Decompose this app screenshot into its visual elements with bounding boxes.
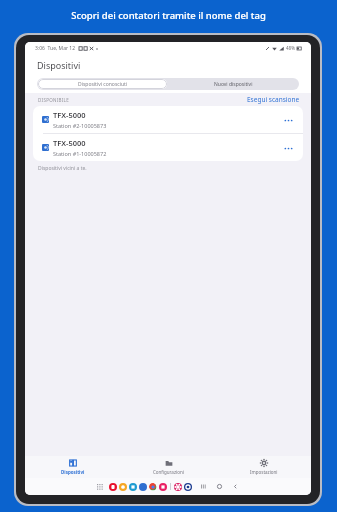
button[interactable]: App: [109, 483, 117, 491]
other: Apps: [97, 484, 103, 490]
button[interactable]: TFX-5000: [33, 134, 303, 161]
button[interactable]: Impostazioni: [216, 456, 311, 478]
staticText: Dispositivi conosciuti: [78, 81, 128, 88]
staticText: Dispositivi: [37, 59, 81, 71]
button[interactable]: App: [149, 483, 157, 491]
button[interactable]: App: [129, 483, 137, 491]
button[interactable]: TFX-5000: [33, 106, 303, 133]
staticText: Dispositivi: [61, 469, 85, 475]
staticText: Station #1-10005872: [53, 150, 107, 157]
staticText: 3:06 Tue, Mar 12: [35, 45, 76, 52]
staticText: Impostazioni: [250, 469, 278, 475]
staticText: Nuovi dispositivi: [214, 81, 253, 88]
staticText: Station #2-10005873: [53, 122, 107, 129]
staticText: DISPONIBILE: [38, 97, 70, 103]
button[interactable]: Home: [216, 483, 223, 490]
button[interactable]: More options: [281, 113, 295, 127]
button[interactable]: App: [174, 483, 182, 491]
button[interactable]: App: [184, 483, 192, 491]
button[interactable]: Dispositivi: [25, 456, 121, 478]
staticText: Configurazioni: [153, 469, 184, 475]
button[interactable]: Back: [232, 483, 239, 490]
staticText: Scopri dei contatori tramite il nome del…: [71, 9, 266, 22]
button[interactable]: Dispositivi conosciuti: [38, 79, 167, 89]
button[interactable]: App: [119, 483, 127, 491]
button[interactable]: Nuovi dispositivi: [168, 78, 299, 90]
button[interactable]: Esegui scansione: [247, 95, 300, 104]
button[interactable]: More options: [281, 141, 295, 155]
staticText: TFX-5000: [53, 138, 86, 148]
staticText: TFX-5000: [53, 110, 86, 120]
button[interactable]: App: [139, 483, 147, 491]
button[interactable]: Configurazioni: [121, 456, 216, 478]
staticText: Esegui scansione: [247, 95, 300, 104]
button[interactable]: App: [159, 483, 167, 491]
button[interactable]: Recents: [200, 483, 207, 490]
staticText: 48%: [286, 45, 295, 51]
staticText: Dispositivi vicini a te.: [38, 165, 87, 172]
